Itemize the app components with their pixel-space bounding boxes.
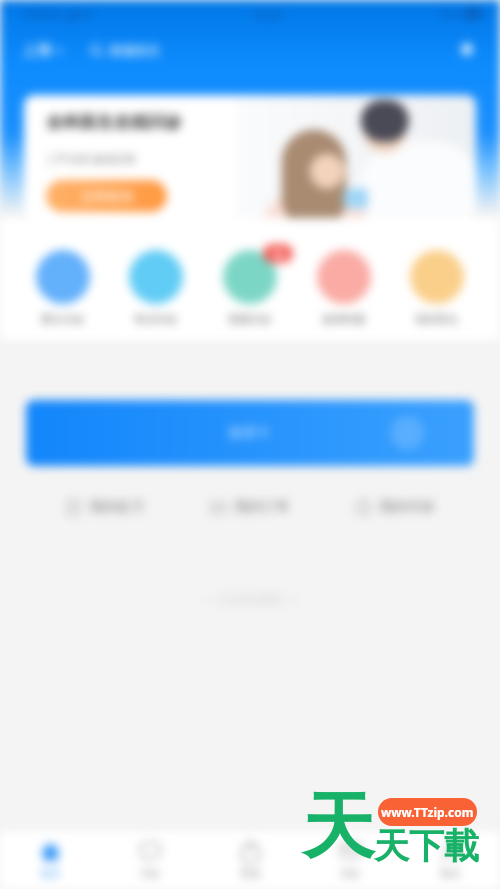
button[interactable]: 我的处方 — [57, 494, 153, 520]
staticText: 全科医生在线问诊 — [46, 112, 182, 133]
staticText: 商城 — [240, 867, 260, 880]
staticText: 立即咨询 — [81, 188, 133, 204]
button[interactable]: 我的问诊 — [347, 494, 443, 520]
button[interactable]: 热 — [219, 250, 281, 326]
staticText: 热 — [274, 248, 283, 259]
staticText: 首页 — [40, 867, 60, 880]
button[interactable]: 我的订单 — [202, 494, 298, 520]
staticText: 我的医生 — [415, 312, 459, 326]
staticText: 我的 — [440, 867, 460, 880]
staticText: 健康档案 — [322, 312, 366, 326]
staticText: 我的处方 — [89, 498, 145, 516]
staticText: 图文问诊 — [41, 312, 85, 326]
button[interactable]: 我的医生 — [406, 250, 468, 326]
staticText: 上海 — [22, 41, 52, 60]
button[interactable]: 上海 — [22, 41, 64, 60]
staticText: 天下載 — [374, 824, 479, 868]
button[interactable]: 商城 — [200, 831, 300, 889]
staticText: 视频问诊 — [228, 312, 272, 326]
staticText: www.TTzip.com — [381, 804, 474, 820]
button[interactable]: 我的 — [400, 831, 500, 889]
button[interactable]: 立即咨询 — [46, 180, 167, 212]
staticText: 三甲名医 极速回复 — [46, 151, 137, 166]
staticText: 天 — [302, 782, 374, 873]
button[interactable]: 首页 — [0, 831, 100, 889]
button[interactable]: 图文问诊 — [32, 250, 94, 326]
button[interactable]: 搜索医生 — [90, 42, 161, 58]
button[interactable]: 健康档案 — [313, 250, 375, 326]
staticText: 我的问诊 — [379, 498, 435, 516]
button[interactable]: 消息 — [454, 37, 480, 63]
staticText: 搜索医生 — [109, 42, 161, 58]
staticText: 健康卡 — [228, 424, 270, 442]
button[interactable]: 电话问诊 — [125, 250, 187, 326]
button[interactable]: 问诊 — [100, 831, 200, 889]
button[interactable]: 全科医生在线问诊 — [24, 95, 476, 218]
staticText: 电话问诊 — [134, 312, 178, 326]
button[interactable]: 健康卡 — [26, 400, 474, 466]
staticText: 中国移动 — [22, 8, 62, 21]
staticText: 问诊 — [140, 867, 160, 880]
staticText: 我的订单 — [234, 498, 290, 516]
staticText: 84% — [441, 7, 461, 21]
staticText: 消息 — [340, 867, 360, 880]
button[interactable]: 消息 — [300, 831, 400, 889]
